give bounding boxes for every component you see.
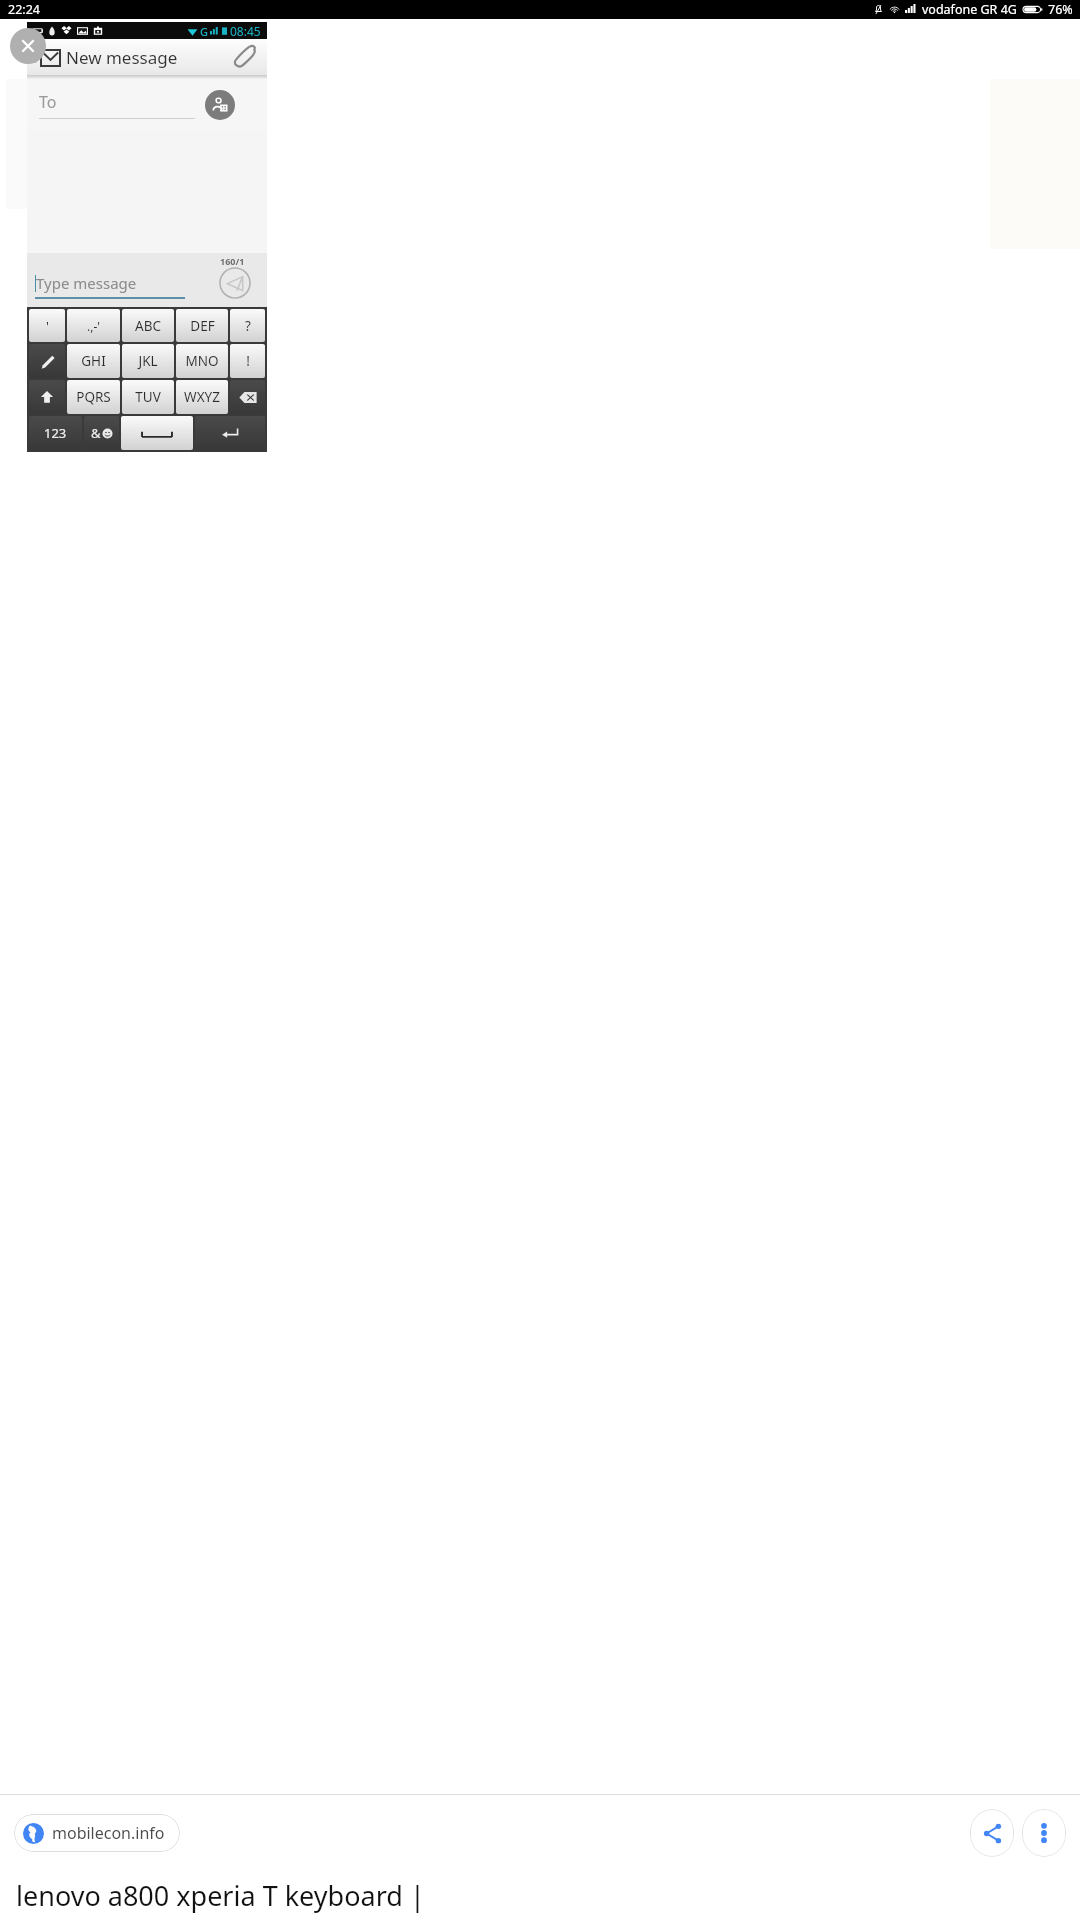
button[interactable]: mobilecon.info (23, 1814, 171, 1852)
staticText: WXYZ (184, 388, 220, 406)
button[interactable]: ? (230, 309, 265, 342)
staticText: ' (46, 317, 49, 335)
button[interactable]: Send (219, 267, 251, 299)
staticText: PQRS (76, 388, 111, 406)
button[interactable]: Close (10, 28, 46, 64)
staticText: MNO (185, 352, 219, 370)
staticText: & (91, 424, 101, 442)
staticText: 08:45 (230, 23, 261, 39)
button[interactable]: ! (230, 344, 265, 378)
staticText: vodafone GR 4G (922, 1, 1017, 18)
staticText: 123 (44, 424, 67, 442)
button[interactable]: WXYZ (176, 380, 228, 414)
button[interactable]: DEF (176, 309, 228, 342)
button[interactable]: ABC (122, 309, 174, 342)
staticText: lenovo a800 xperia T keyboard | (16, 1877, 425, 1914)
staticText: New message (66, 46, 178, 69)
button[interactable]: TUV (122, 380, 174, 414)
button[interactable] (29, 344, 65, 378)
button[interactable]: & (84, 416, 119, 450)
staticText: To (39, 91, 57, 113)
staticText: TUV (135, 388, 161, 406)
staticText: G (200, 24, 208, 39)
staticText: GHI (81, 352, 106, 370)
button[interactable] (121, 416, 193, 450)
staticText: ! (246, 352, 250, 370)
button[interactable]: MNO (176, 344, 228, 378)
staticText: 160/1 (220, 255, 245, 267)
button[interactable]: .,-' (67, 309, 120, 342)
button[interactable] (29, 380, 65, 414)
staticText: 22:24 (8, 1, 40, 18)
button[interactable]: GHI (67, 344, 120, 378)
staticText: JKL (138, 352, 158, 370)
staticText: mobilecon.info (52, 1822, 165, 1844)
staticText: DEF (190, 317, 215, 335)
button[interactable]: Pick contact (205, 90, 235, 120)
button[interactable]: ' (29, 309, 65, 342)
button[interactable]: Share (970, 1809, 1014, 1857)
staticText: Type message (36, 273, 137, 293)
button[interactable]: PQRS (67, 380, 120, 414)
button[interactable]: 123 (29, 416, 82, 450)
staticText: ? (245, 317, 251, 335)
staticText: ABC (135, 317, 161, 335)
button[interactable]: JKL (122, 344, 174, 378)
staticText: .,-' (87, 318, 100, 334)
button[interactable]: To (39, 91, 195, 119)
button[interactable] (195, 416, 265, 450)
button[interactable] (230, 380, 265, 414)
button[interactable]: New message (27, 39, 267, 75)
button[interactable]: More options (1022, 1809, 1066, 1857)
button[interactable]: Attach (227, 40, 261, 74)
staticText: 76% (1048, 1, 1073, 18)
button[interactable]: Type message (35, 273, 185, 299)
